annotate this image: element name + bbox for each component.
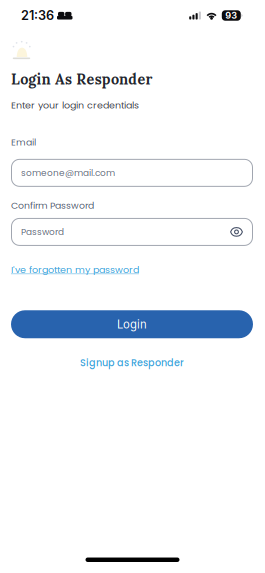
staticText: 21:36 xyxy=(21,8,54,23)
staticText: Enter your login credentials xyxy=(11,98,139,112)
staticText: Signup as Responder xyxy=(80,356,184,370)
button[interactable]: I've forgotten my password xyxy=(11,263,139,276)
button[interactable]: Show password xyxy=(230,227,243,237)
button[interactable]: Login xyxy=(11,310,253,338)
button[interactable]: Password xyxy=(11,218,253,246)
staticText: Email xyxy=(11,136,36,149)
staticText: Password xyxy=(21,226,64,238)
staticText: Confirm Password xyxy=(11,199,94,212)
button[interactable]: Signup as Responder xyxy=(80,356,184,370)
staticText: Login As Responder xyxy=(11,70,153,88)
staticText: I've forgotten my password xyxy=(11,263,139,276)
staticText: 93 xyxy=(225,10,237,21)
staticText: Login xyxy=(117,317,147,331)
staticText: someone@mail.com xyxy=(21,167,115,179)
button[interactable]: someone@mail.com xyxy=(11,159,253,187)
